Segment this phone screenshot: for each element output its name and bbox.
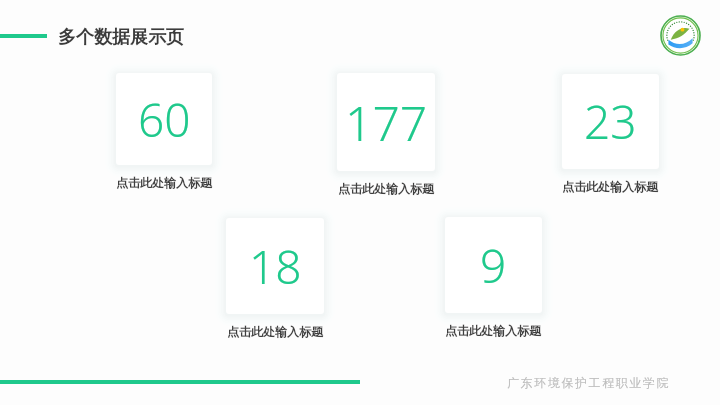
button[interactable]: 点击此处输入标题 [428,323,558,338]
button[interactable]: 23 [562,74,659,169]
staticText: 广东环境保护工程职业学院 [507,375,671,390]
staticText: 点击此处输入标题 [338,181,434,196]
staticText: 多个数据展示页 [58,26,184,49]
button[interactable]: 点击此处输入标题 [320,181,452,196]
button[interactable]: 点击此处输入标题 [99,175,229,190]
button[interactable]: 60 [116,73,212,165]
staticText: 177 [345,90,428,155]
button[interactable]: 点击此处输入标题 [209,324,341,339]
staticText: 18 [249,235,302,298]
other: School logo [661,16,700,55]
button[interactable]: 18 [226,218,324,314]
staticText: 9 [480,234,507,297]
staticText: 60 [138,88,191,151]
button[interactable]: 点击此处输入标题 [545,179,675,194]
staticText: 点击此处输入标题 [562,179,658,194]
staticText: 23 [584,90,637,153]
button[interactable]: 9 [445,217,542,313]
staticText: 点击此处输入标题 [445,323,541,338]
staticText: 点击此处输入标题 [227,324,323,339]
staticText: 点击此处输入标题 [116,175,212,190]
button[interactable]: 177 [337,73,435,171]
